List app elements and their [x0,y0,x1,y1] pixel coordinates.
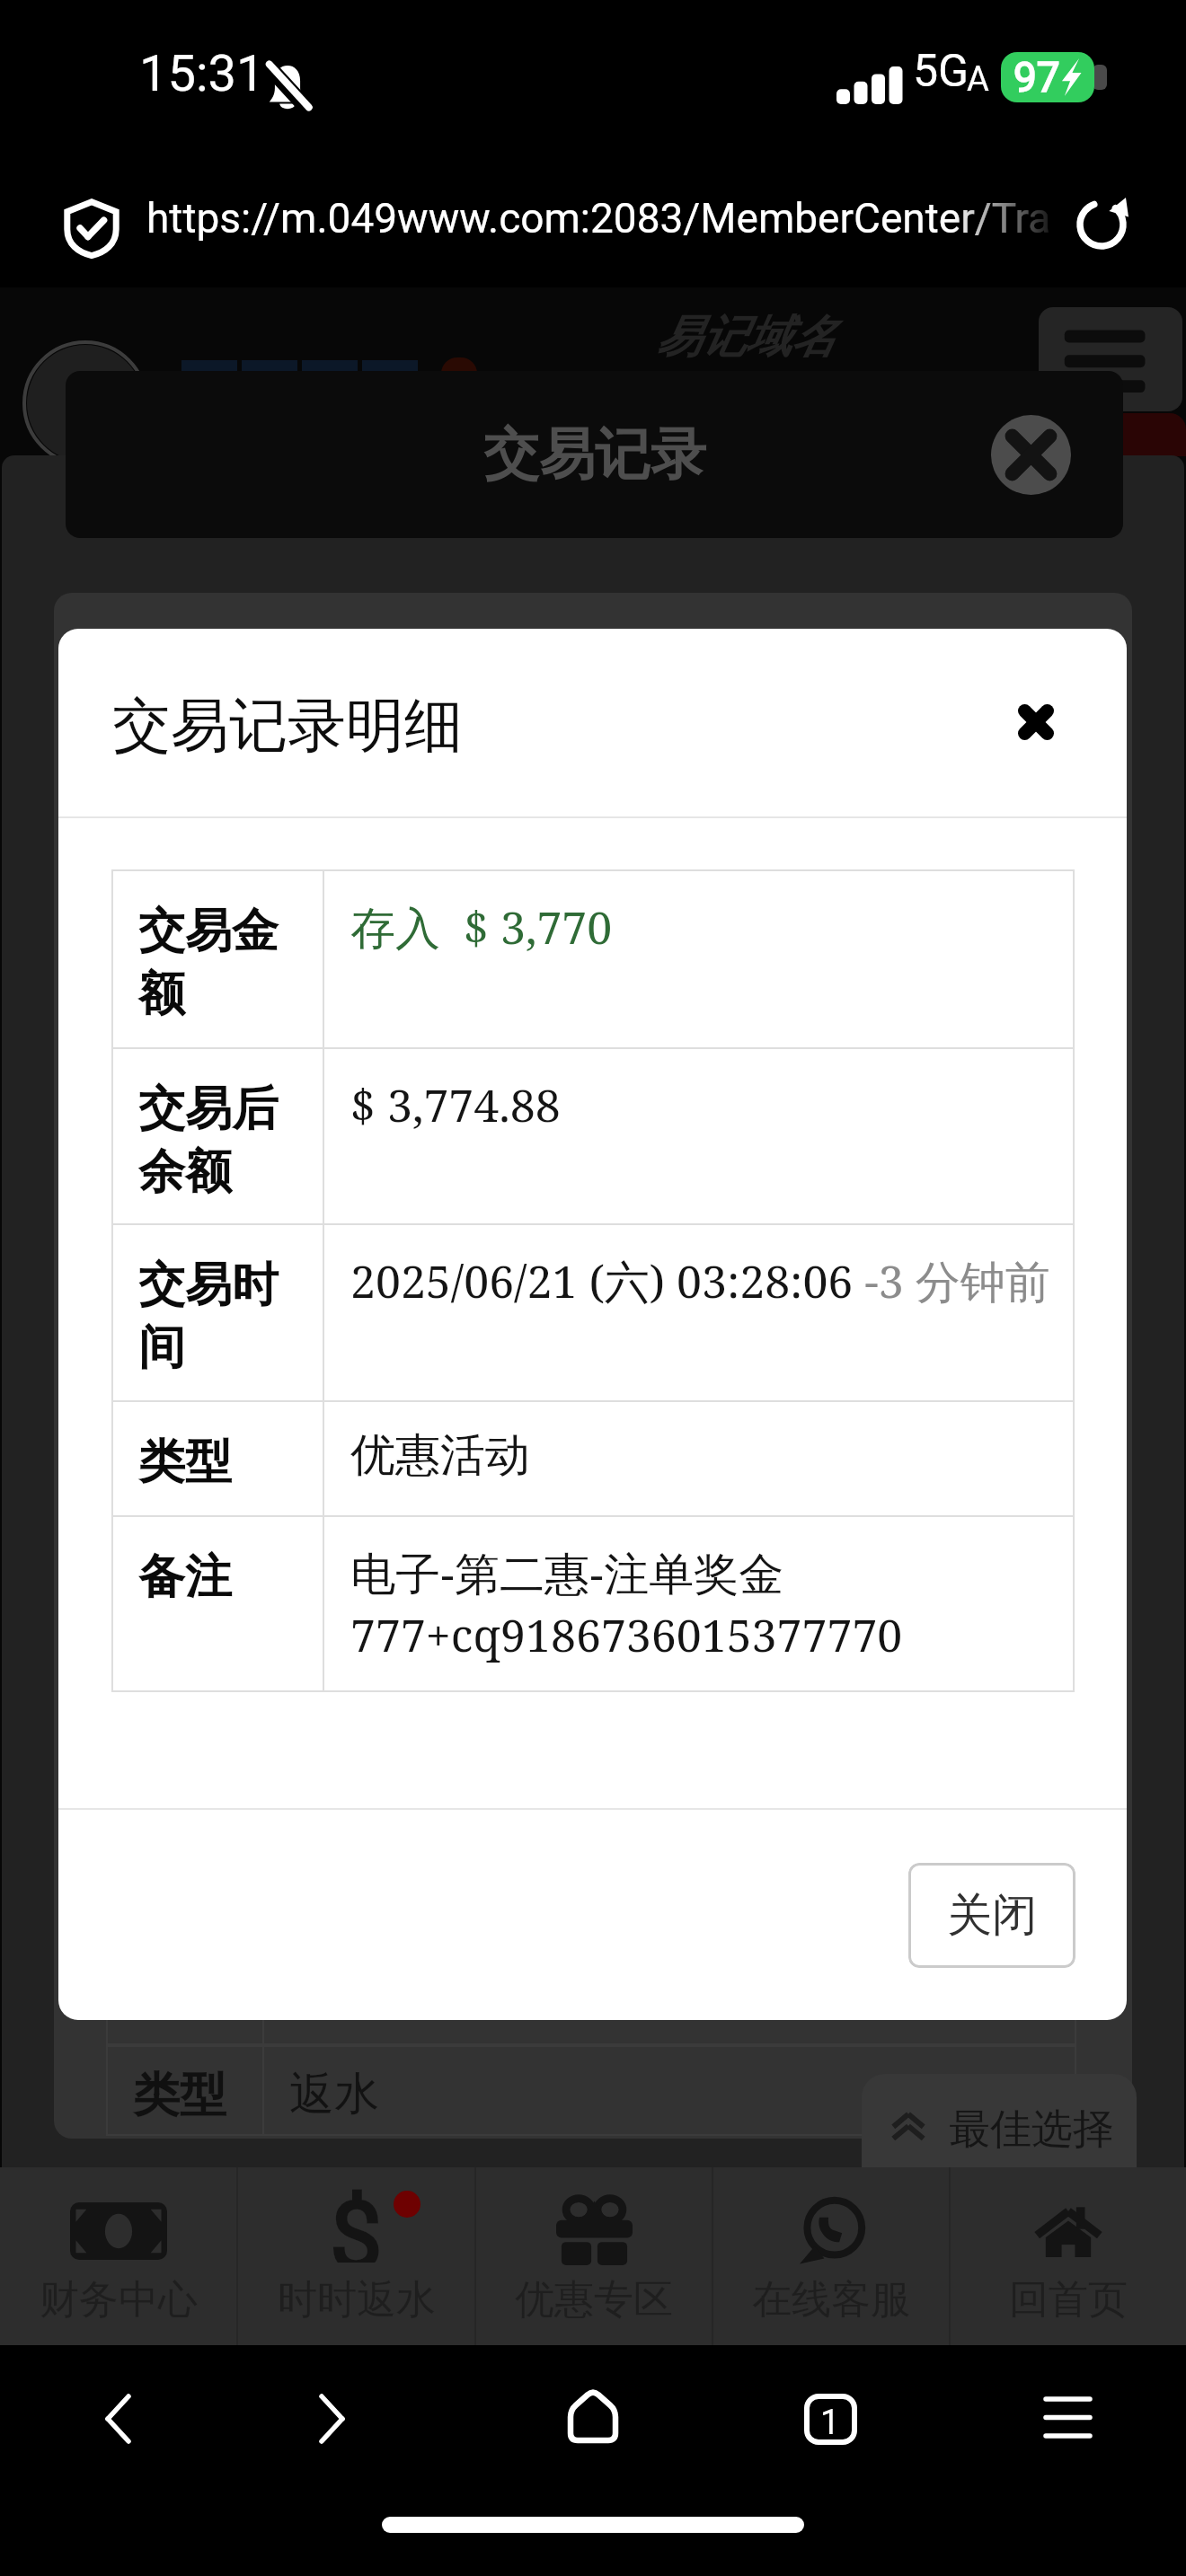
staticText: $ [330,2182,383,2263]
staticText: $ 3,774.88 [350,1074,561,1135]
button[interactable]: 最佳选择 [862,2074,1137,2167]
button[interactable]: $ [238,2167,474,2345]
staticText: 财务中心 [40,2275,198,2325]
staticText: 交易后 余额 [138,1080,279,1201]
staticText: 在线客服 [752,2275,910,2325]
staticText: 交易金 额 [138,902,279,1023]
button[interactable]: Home [546,2383,640,2476]
button[interactable]: Forward [286,2383,379,2476]
staticText: 类型 [138,1433,232,1492]
staticText: 交易记录明细 [112,689,463,763]
button[interactable]: Close dialog [996,682,1077,763]
staticText: 交易时 间 [138,1256,279,1377]
staticText: 15:31 [139,44,265,103]
staticText: 最佳选择 [949,2104,1114,2156]
staticText: 1 [820,2403,840,2443]
staticText: 电子-第二惠-注单奖金 777+cq9186736015377770 [350,1542,903,1664]
staticText: 2025/06/21 (六) 03:28:06 -3 分钟前 [350,1250,1050,1311]
button[interactable]: Close transaction record [991,415,1071,495]
staticText: 回首页 [1009,2275,1128,2325]
button[interactable]: Back [72,2383,165,2476]
staticText: 类型 [133,2066,226,2125]
staticText: 优惠专区 [515,2275,673,2325]
button[interactable]: 关闭 [908,1863,1075,1968]
staticText: A [967,59,989,100]
button[interactable]: Menu [1013,2383,1107,2476]
staticText: 5G [913,45,969,98]
button[interactable]: 回首页 [951,2167,1186,2345]
staticText: 存入 $ 3,770 [350,896,613,957]
staticText: 优惠活动 [350,1427,530,1484]
staticText: 97 [1013,53,1060,101]
staticText: 时时返水 [278,2275,436,2325]
button[interactable]: Tabs [782,2383,875,2476]
button[interactable]: 优惠专区 [476,2167,712,2345]
staticText: 返水 [289,2066,379,2122]
staticText: 易记域名 [656,309,836,366]
staticText: 备注 [138,1548,232,1607]
button[interactable]: 财务中心 [0,2167,236,2345]
button[interactable]: 在线客服 [713,2167,949,2345]
staticText: https://m.049www.com:2083/MemberCenter/T… [146,194,1051,243]
staticText: 关闭 [947,1887,1037,1944]
staticText: 交易记录 [483,419,706,490]
